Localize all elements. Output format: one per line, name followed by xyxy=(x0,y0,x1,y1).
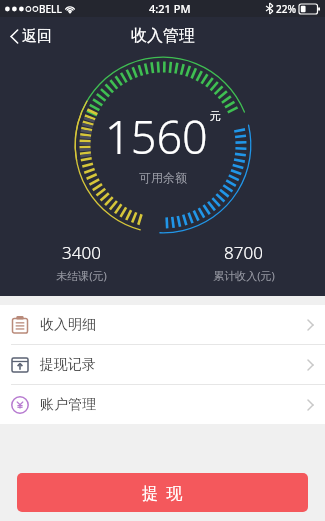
staticText: 账户管理 xyxy=(40,396,96,414)
button[interactable]: 提 现 xyxy=(17,473,308,512)
staticText: 收入管理 xyxy=(131,26,195,46)
staticText: 提 现 xyxy=(142,482,183,504)
button[interactable]: 提现记录 xyxy=(0,345,325,384)
button[interactable]: 返回 xyxy=(6,23,56,50)
staticText: 元 xyxy=(210,109,221,123)
staticText: 1560 xyxy=(105,106,208,167)
staticText: 8700 xyxy=(224,241,263,264)
staticText: 累计收入(元) xyxy=(213,268,275,283)
staticText: 返回 xyxy=(22,27,52,46)
staticText: 3400 xyxy=(62,241,101,264)
staticText: 可用余额 xyxy=(139,170,187,185)
staticText: 22% xyxy=(276,2,296,16)
button[interactable]: 账户管理 xyxy=(0,385,325,424)
staticText: 提现记录 xyxy=(40,356,96,374)
staticText: 未结课(元) xyxy=(56,268,107,283)
staticText: 4:21 PM xyxy=(149,1,191,16)
button[interactable]: 收入明细 xyxy=(0,305,325,344)
staticText: BELL xyxy=(39,2,62,16)
staticText: 收入明细 xyxy=(40,316,96,334)
